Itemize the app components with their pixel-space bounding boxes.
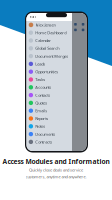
staticText: Reports — [35, 116, 48, 121]
button[interactable]: Contacts — [26, 91, 72, 99]
staticText: Documents — [35, 131, 55, 137]
staticText: Accounts — [35, 85, 51, 90]
staticText: Home Dashboard — [35, 30, 66, 35]
button[interactable]: Quotes — [26, 99, 72, 107]
button[interactable]: Document Merges — [26, 52, 72, 60]
staticText: Calendar — [35, 38, 51, 43]
staticText: Opportunities — [35, 69, 58, 74]
staticText: Quotes — [35, 100, 47, 105]
staticText: 9:41 — [29, 15, 36, 19]
staticText: Contracts — [35, 139, 52, 144]
staticText: Global Search — [35, 46, 59, 51]
staticText: Notes — [35, 124, 45, 129]
staticText: Document Merges — [35, 53, 68, 59]
button[interactable]: Opportunities — [26, 68, 72, 76]
staticText: Quickly close deals and service — [29, 167, 83, 173]
button[interactable]: Home Dashboard — [26, 29, 72, 37]
button[interactable]: Accounts — [26, 83, 72, 91]
button[interactable]: Alex Jensen — [26, 21, 72, 29]
button[interactable]: Global Search — [26, 44, 72, 52]
button[interactable]: Leads — [26, 60, 72, 68]
staticText: Leads — [35, 61, 45, 66]
button[interactable]: Calendar — [26, 37, 72, 44]
button[interactable]: Tasks — [26, 76, 72, 83]
button[interactable]: Contracts — [26, 138, 72, 146]
staticText: Access Modules and Information — [2, 157, 109, 166]
button[interactable]: Notes — [26, 122, 72, 130]
button[interactable]: Documents — [26, 130, 72, 138]
staticText: Alex Jensen — [35, 22, 55, 27]
button[interactable]: Emails — [26, 107, 72, 115]
staticText: Contacts — [35, 92, 50, 98]
staticText: Emails — [35, 108, 47, 113]
button[interactable]: Reports — [26, 115, 72, 122]
staticText: customers, anytime and anywhere. — [25, 174, 86, 179]
staticText: Tasks — [35, 77, 45, 82]
